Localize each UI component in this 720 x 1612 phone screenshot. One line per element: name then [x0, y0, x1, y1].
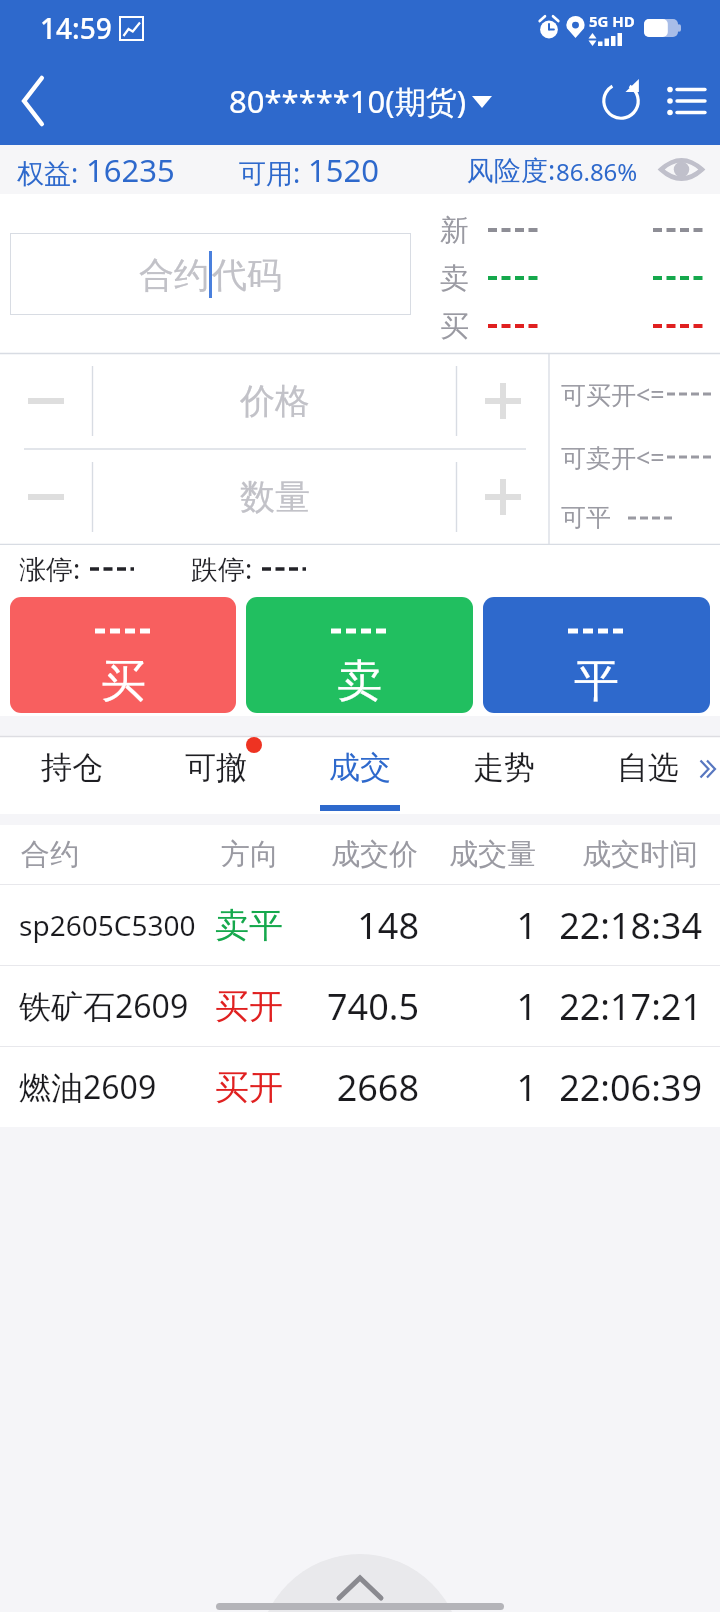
staticText: 买开: [215, 985, 283, 1028]
staticText: 成交时间: [582, 836, 698, 873]
button[interactable]: 80*****10(期货): [229, 80, 492, 122]
staticText: 价格: [240, 379, 310, 423]
staticText: 86.86%: [556, 155, 638, 188]
staticText: 新: [440, 212, 469, 249]
button[interactable]: 走势: [432, 736, 576, 814]
button[interactable]: Toggle visibility: [642, 145, 720, 194]
staticText: 14:59: [40, 9, 112, 47]
staticText: 合约: [139, 253, 209, 297]
staticText: 走势: [473, 748, 535, 787]
staticText: 740.5: [0, 982, 419, 1031]
button[interactable]: 铁矿石2609: [0, 965, 720, 1046]
staticText: 80*****10(期货): [229, 80, 466, 122]
staticText: 22:18:34: [0, 901, 702, 950]
staticText: 5G HD: [589, 11, 635, 31]
button[interactable]: 买: [420, 302, 720, 350]
staticText: 权益:: [17, 154, 86, 191]
staticText: 燃油2609: [19, 1065, 157, 1109]
staticText: 卖: [337, 653, 382, 710]
staticText: 可买开<=: [561, 377, 665, 411]
staticText: 方向: [221, 836, 279, 873]
staticText: 可卖开<=: [561, 440, 665, 474]
button[interactable]: Decrease 数量: [0, 449, 92, 545]
button[interactable]: 数量: [93, 449, 456, 545]
staticText: 持仓: [41, 748, 103, 787]
staticText: 148: [0, 901, 419, 950]
button[interactable]: Refresh: [588, 56, 654, 145]
button[interactable]: 新: [420, 206, 720, 254]
staticText: 22:06:39: [0, 1063, 702, 1112]
button[interactable]: 价格: [93, 353, 456, 449]
button[interactable]: 买: [10, 597, 236, 713]
button[interactable]: Back: [0, 56, 70, 145]
button[interactable]: 卖: [246, 597, 473, 713]
staticText: 卖平: [215, 904, 283, 947]
button[interactable]: 持仓: [0, 736, 144, 814]
staticText: 可平: [561, 502, 611, 533]
staticText: 成交价: [331, 836, 418, 873]
staticText: 代码: [212, 253, 282, 297]
button[interactable]: sp2605C5300: [0, 884, 720, 965]
staticText: 成交: [329, 748, 391, 787]
button[interactable]: Decrease 价格: [0, 353, 92, 449]
staticText: 买开: [215, 1066, 283, 1109]
button[interactable]: 可撤: [144, 736, 288, 814]
staticText: 跌停:: [191, 550, 253, 587]
staticText: 1: [0, 901, 537, 950]
staticText: sp2605C5300: [19, 906, 196, 944]
button[interactable]: 成交: [288, 736, 432, 814]
staticText: 自选: [617, 748, 679, 787]
staticText: 风险度:: [467, 151, 556, 188]
staticText: 买: [440, 308, 469, 345]
staticText: 卖: [440, 260, 469, 297]
button[interactable]: Increase 价格: [457, 353, 549, 449]
button[interactable]: Expand panel: [0, 1540, 720, 1612]
button[interactable]: Menu: [654, 56, 720, 145]
staticText: 铁矿石2609: [19, 984, 189, 1028]
staticText: 成交量: [449, 836, 536, 873]
staticText: 可撤: [185, 748, 247, 787]
staticText: 1520: [308, 149, 379, 191]
button[interactable]: 燃油2609: [0, 1046, 720, 1127]
staticText: 2668: [0, 1063, 419, 1112]
button[interactable]: More tabs: [684, 736, 720, 814]
staticText: 合约: [21, 836, 79, 873]
button[interactable]: 自选: [576, 736, 720, 814]
staticText: 1: [0, 1063, 537, 1112]
staticText: 16235: [86, 149, 175, 191]
staticText: 可用:: [239, 154, 308, 191]
staticText: 数量: [240, 475, 310, 519]
staticText: 平: [574, 653, 619, 710]
staticText: 22:17:21: [0, 982, 702, 1031]
staticText: 1: [0, 982, 537, 1031]
button[interactable]: 卖: [420, 254, 720, 302]
button[interactable]: 合约: [10, 233, 411, 315]
button[interactable]: 平: [483, 597, 710, 713]
button[interactable]: Increase 数量: [457, 449, 549, 545]
staticText: 涨停:: [19, 550, 81, 587]
staticText: 买: [101, 653, 146, 710]
